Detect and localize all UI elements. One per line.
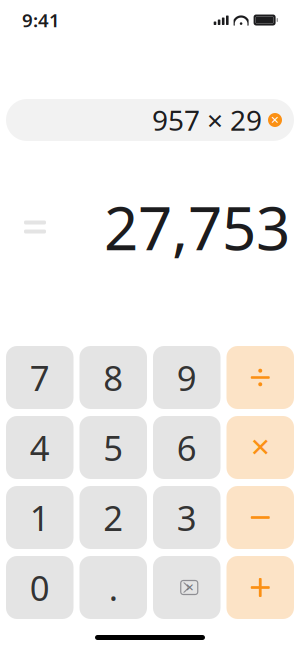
button[interactable]: 8 xyxy=(79,346,147,409)
button[interactable]: Multiply xyxy=(226,416,294,479)
button[interactable]: 3 xyxy=(153,486,220,549)
staticText: 2 xyxy=(103,494,123,540)
staticText: ✕ xyxy=(250,433,271,462)
staticText: 9:41 xyxy=(22,8,60,32)
staticText: . xyxy=(109,564,118,610)
staticText: 7 xyxy=(30,354,50,400)
staticText: 3 xyxy=(177,494,197,540)
button[interactable]: 0 xyxy=(6,556,73,619)
staticText: ✕ xyxy=(185,581,194,593)
button[interactable]: Subtract xyxy=(226,486,294,549)
button[interactable]: Clear xyxy=(262,105,288,135)
staticText: 27,753 xyxy=(104,187,290,267)
button[interactable]: 5 xyxy=(79,416,147,479)
button[interactable]: 2 xyxy=(79,486,147,549)
staticText: 8 xyxy=(103,354,123,400)
button[interactable]: 4 xyxy=(6,416,73,479)
staticText: 1 xyxy=(30,494,50,540)
staticText: 0 xyxy=(30,564,50,610)
button[interactable]: Add xyxy=(226,556,294,619)
staticText: 957 × 29 xyxy=(152,101,262,139)
staticText: 9 xyxy=(177,354,197,400)
button[interactable]: 6 xyxy=(153,416,220,479)
button[interactable]: . xyxy=(79,556,147,619)
button[interactable]: 7 xyxy=(6,346,73,409)
staticText: ✕ xyxy=(270,114,279,126)
staticText: 6 xyxy=(177,424,197,470)
button[interactable]: Backspace xyxy=(153,556,220,619)
button[interactable]: Divide xyxy=(226,346,294,409)
button[interactable]: 9 xyxy=(153,346,220,409)
staticText: 4 xyxy=(30,424,50,470)
button[interactable]: 1 xyxy=(6,486,73,549)
staticText: 5 xyxy=(103,424,123,470)
